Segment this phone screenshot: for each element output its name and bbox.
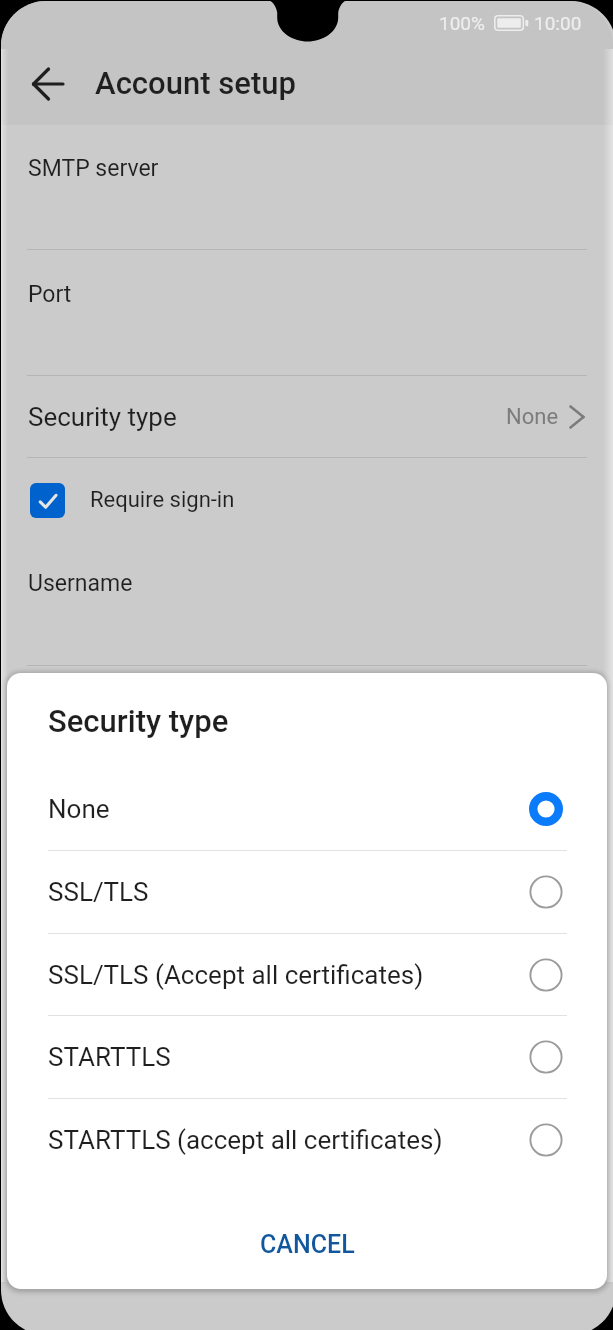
button[interactable]: Back (24, 60, 72, 108)
staticText: None (506, 404, 559, 430)
staticText: Require sign-in (90, 487, 235, 513)
button[interactable]: SSL/TLS (7, 850, 607, 933)
button[interactable]: Security type (1, 376, 613, 457)
staticText: STARTTLS (48, 1042, 171, 1072)
button[interactable]: None (7, 767, 607, 850)
staticText: CANCEL (260, 1230, 355, 1259)
staticText: None (48, 794, 110, 824)
staticText: STARTTLS (accept all certificates) (48, 1125, 443, 1155)
staticText: 10:00 (534, 12, 582, 34)
staticText: Security type (28, 402, 177, 432)
staticText: Security type (48, 703, 229, 739)
staticText: Username (28, 570, 133, 597)
button[interactable]: STARTTLS (accept all certificates) (7, 1098, 607, 1181)
staticText: SSL/TLS (48, 877, 149, 907)
staticText: Account setup (95, 65, 296, 101)
button[interactable]: Require sign-in (1, 458, 613, 542)
staticText: SMTP server (28, 155, 159, 182)
button[interactable]: SSL/TLS (Accept all certificates) (7, 933, 607, 1016)
staticText: 100% (439, 12, 485, 34)
button[interactable]: STARTTLS (7, 1015, 607, 1098)
button[interactable]: CANCEL (236, 1218, 379, 1271)
staticText: SSL/TLS (Accept all certificates) (48, 960, 424, 990)
staticText: Port (28, 281, 72, 308)
